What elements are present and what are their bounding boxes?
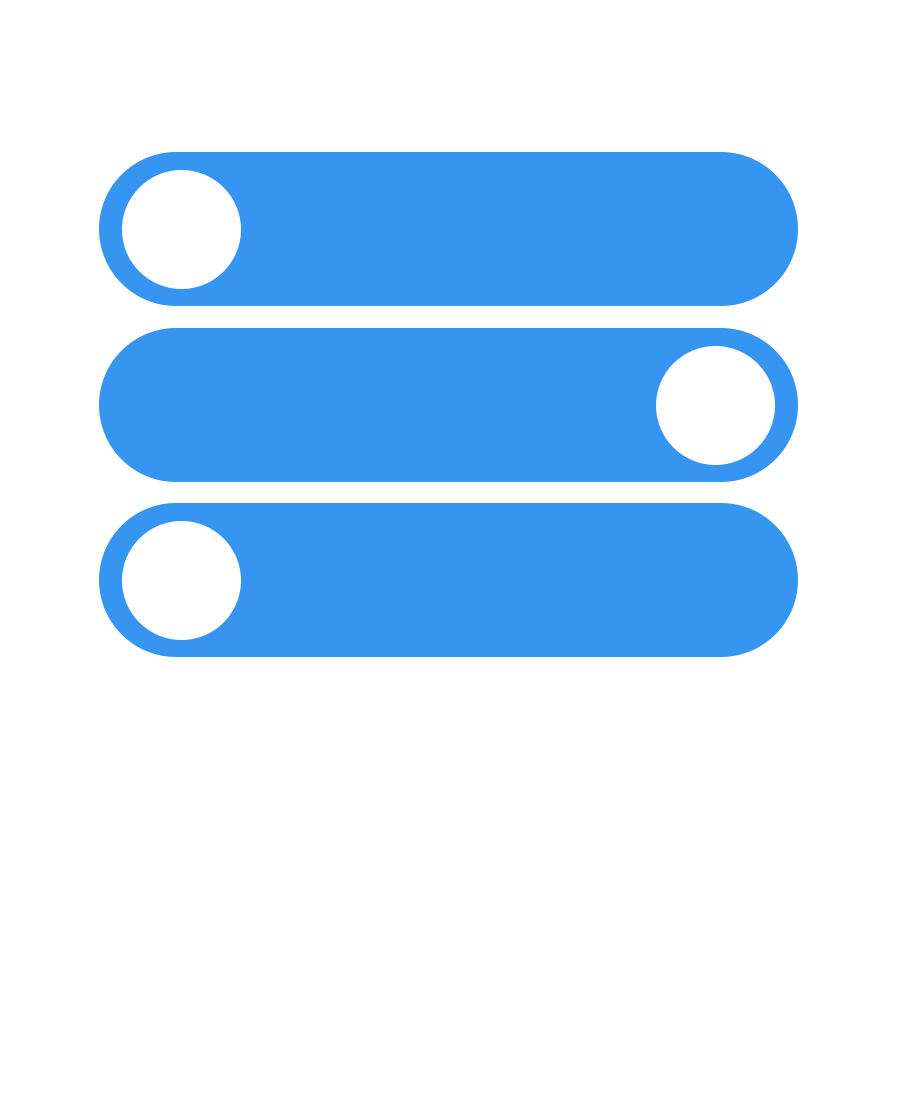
button[interactable]: Switch off [99,503,798,657]
button[interactable]: Switch off [99,152,798,306]
button[interactable]: Switch on [99,328,798,482]
